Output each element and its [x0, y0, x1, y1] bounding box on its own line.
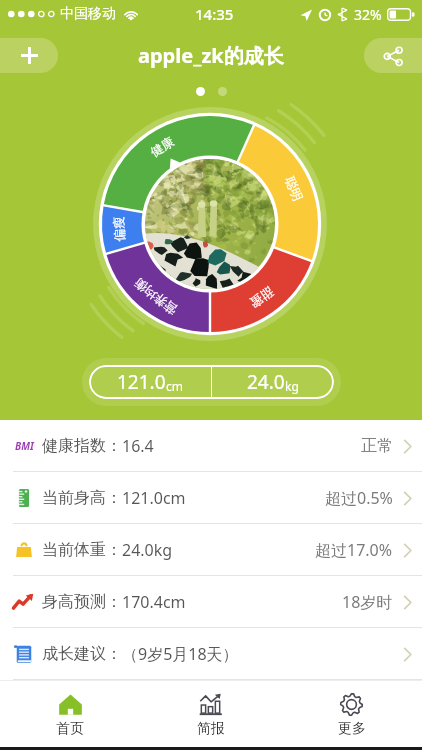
staticText: cm	[166, 378, 183, 394]
staticText: kg	[285, 378, 299, 394]
staticText: 超过0.5%	[325, 487, 393, 509]
staticText: 甜蜜	[247, 283, 276, 311]
button[interactable]: 当前身高：	[0, 472, 422, 524]
staticText: 营养均衡	[131, 275, 181, 317]
staticText: 当前身高：	[42, 488, 122, 508]
button[interactable]: 简报	[140, 681, 281, 747]
staticText: 首页	[56, 720, 84, 738]
button[interactable]: Share	[364, 38, 422, 73]
staticText: 健康	[148, 134, 177, 160]
staticText: 24.0	[247, 369, 285, 395]
button[interactable]: 首页	[0, 681, 140, 747]
staticText: BMI	[15, 439, 34, 453]
button[interactable]: BMI	[0, 420, 422, 472]
staticText: 当前体重：	[42, 540, 122, 560]
staticText: 32%	[354, 5, 382, 24]
staticText: 18岁时	[342, 591, 393, 613]
staticText: 正常	[361, 436, 393, 456]
staticText: （9岁5月18天）	[122, 643, 239, 665]
staticText: 超过17.0%	[315, 539, 393, 561]
button[interactable]: 当前体重：	[0, 524, 422, 576]
staticText: 121.0	[117, 369, 166, 395]
staticText: 170.4cm	[122, 591, 186, 613]
staticText: 偏瘦	[111, 216, 128, 242]
staticText: 健康指数：	[42, 436, 122, 456]
staticText: 简报	[197, 720, 225, 738]
staticText: 14:35	[195, 4, 234, 24]
staticText: apple_zk的成长	[138, 42, 284, 69]
button[interactable]: 身高预测：	[0, 576, 422, 628]
staticText: 121.0cm	[122, 487, 186, 509]
staticText: 聪明	[281, 174, 306, 204]
button[interactable]: Add	[0, 38, 58, 73]
staticText: 更多	[338, 720, 366, 738]
staticText: 身高预测：	[42, 592, 122, 612]
staticText: 24.0kg	[122, 539, 173, 561]
staticText: 16.4	[122, 435, 154, 457]
staticText: 成长建议：	[42, 644, 122, 664]
button[interactable]: 121.0	[89, 365, 334, 399]
button[interactable]: 成长建议：	[0, 628, 422, 680]
button[interactable]: 更多	[281, 681, 422, 747]
staticText: 中国移动	[60, 5, 116, 23]
